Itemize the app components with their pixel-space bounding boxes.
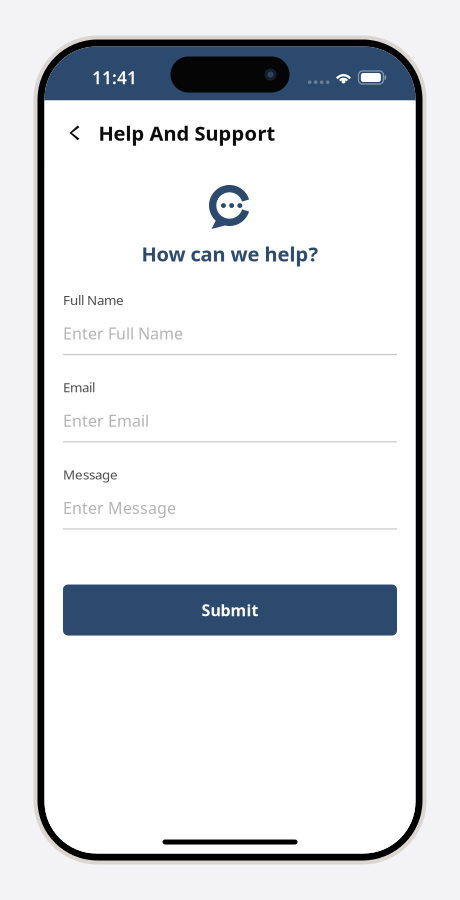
button[interactable]: Back	[44, 100, 90, 165]
staticText: Submit	[201, 599, 258, 621]
staticText: Enter Message	[63, 497, 176, 518]
staticText: Help And Support	[98, 120, 275, 146]
staticText: 11:41	[92, 66, 137, 89]
button[interactable]: Submit	[63, 584, 397, 635]
staticText: Email	[63, 378, 95, 396]
staticText: Enter Email	[63, 410, 149, 431]
staticText: Message	[63, 465, 118, 483]
staticText: Full Name	[63, 291, 124, 309]
staticText: Enter Full Name	[63, 323, 183, 344]
staticText: How can we help?	[141, 240, 318, 267]
